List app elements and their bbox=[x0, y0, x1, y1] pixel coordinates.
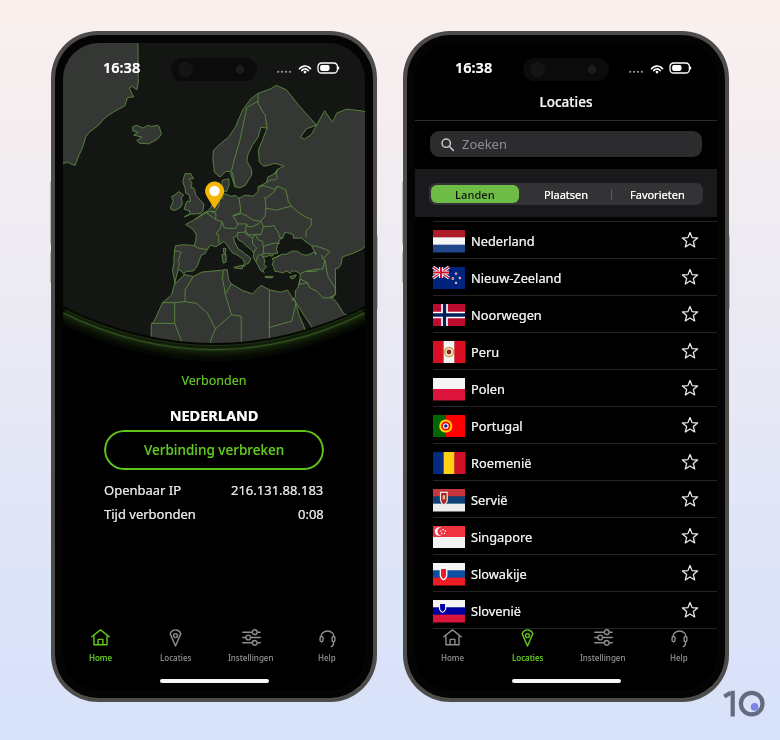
staticText: Verbonden bbox=[63, 372, 365, 389]
staticText: 0:08 bbox=[298, 505, 324, 523]
staticText: Portugal bbox=[471, 417, 523, 434]
button[interactable]: Slowakije bbox=[415, 555, 717, 592]
button[interactable]: Plaatsen bbox=[523, 185, 610, 203]
button[interactable]: Nieuw-Zeeland bbox=[415, 259, 717, 296]
button[interactable]: Zoeken bbox=[430, 131, 702, 157]
staticText: Polen bbox=[471, 380, 505, 397]
staticText: Locaties bbox=[160, 652, 192, 663]
staticText: Locaties bbox=[512, 652, 544, 663]
staticText: Locaties bbox=[415, 93, 717, 111]
button[interactable]: Noorwegen bbox=[415, 296, 717, 333]
button[interactable]: Polen bbox=[415, 370, 717, 407]
staticText: 16:38 bbox=[455, 57, 493, 77]
staticText: NEDERLAND bbox=[63, 405, 365, 425]
staticText: Plaatsen bbox=[544, 187, 589, 202]
button[interactable]: Home bbox=[415, 628, 490, 672]
button[interactable]: Peru bbox=[415, 333, 717, 370]
button[interactable]: Help bbox=[289, 628, 365, 672]
button[interactable]: Help bbox=[641, 628, 717, 672]
staticText: Singapore bbox=[471, 528, 533, 545]
button[interactable]: Favorieten bbox=[614, 185, 701, 203]
staticText: Help bbox=[670, 652, 688, 663]
button[interactable]: Verbinding verbreken bbox=[104, 430, 324, 470]
staticText: Openbaar IP bbox=[104, 481, 182, 499]
staticText: Servië bbox=[471, 491, 508, 508]
staticText: Noorwegen bbox=[471, 306, 542, 323]
button[interactable]: Servië bbox=[415, 481, 717, 518]
staticText: Favorieten bbox=[630, 187, 685, 202]
staticText: Tijd verbonden bbox=[104, 505, 196, 523]
button[interactable]: Roemenië bbox=[415, 444, 717, 481]
staticText: Slowakije bbox=[471, 565, 527, 582]
staticText: Home bbox=[441, 652, 465, 663]
staticText: Nieuw-Zeeland bbox=[471, 269, 562, 286]
staticText: Instellingen bbox=[228, 652, 274, 663]
staticText: Nederland bbox=[471, 232, 535, 249]
button[interactable]: Home bbox=[63, 628, 138, 672]
button[interactable]: Instellingen bbox=[565, 628, 641, 672]
staticText: Slovenië bbox=[471, 602, 521, 619]
button[interactable]: Landen bbox=[431, 185, 519, 203]
button[interactable]: Slovenië bbox=[415, 592, 717, 629]
staticText: Verbinding verbreken bbox=[144, 441, 285, 459]
button[interactable]: Portugal bbox=[415, 407, 717, 444]
staticText: Peru bbox=[471, 343, 500, 360]
button[interactable]: Nederland bbox=[415, 222, 717, 259]
staticText: Home bbox=[89, 652, 113, 663]
button[interactable]: Singapore bbox=[415, 518, 717, 555]
staticText: Instellingen bbox=[580, 652, 626, 663]
staticText: Zoeken bbox=[462, 135, 507, 153]
button[interactable]: Locaties bbox=[138, 628, 213, 672]
staticText: 16:38 bbox=[103, 57, 141, 77]
button[interactable]: Instellingen bbox=[213, 628, 289, 672]
button[interactable]: Locaties bbox=[490, 628, 565, 672]
staticText: Landen bbox=[455, 187, 495, 202]
staticText: Help bbox=[318, 652, 336, 663]
staticText: Roemenië bbox=[471, 454, 532, 471]
staticText: 216.131.88.183 bbox=[231, 481, 324, 499]
